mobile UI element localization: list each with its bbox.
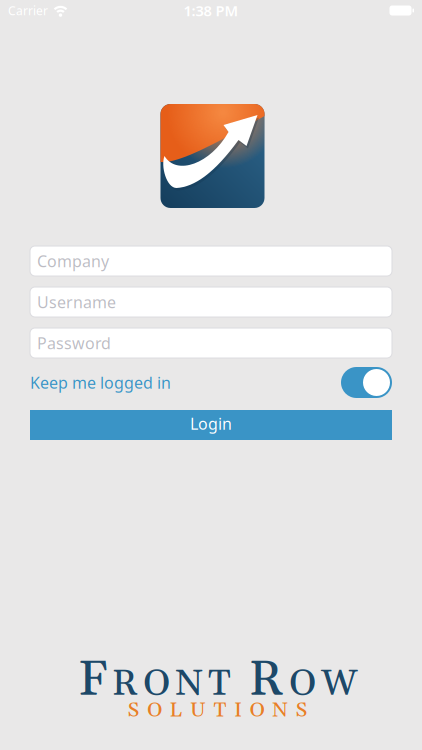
staticText: Company	[37, 250, 109, 272]
staticText: Password	[37, 332, 111, 354]
staticText: T	[213, 698, 226, 723]
staticText: N	[272, 698, 288, 723]
staticText: L	[169, 698, 182, 723]
staticText: Carrier	[8, 2, 48, 18]
staticText: O	[143, 661, 170, 707]
staticText: O	[249, 698, 264, 723]
button[interactable]: Password	[30, 328, 392, 358]
button[interactable]: Company	[30, 246, 392, 276]
staticText: T	[208, 661, 231, 707]
staticText: I	[234, 698, 242, 723]
staticText: R	[112, 661, 138, 707]
staticText: S	[127, 698, 139, 723]
staticText: W	[321, 661, 357, 707]
button[interactable]: Login	[30, 410, 392, 440]
staticText: U	[190, 698, 206, 723]
staticText: S	[295, 698, 307, 723]
staticText: Login	[190, 413, 232, 434]
staticText: R	[249, 650, 284, 711]
staticText: F	[78, 650, 107, 711]
button[interactable]: Keep me logged in	[341, 367, 392, 398]
staticText: 1:38 PM	[183, 1, 238, 20]
button[interactable]: Username	[30, 287, 392, 317]
staticText: O	[147, 698, 162, 723]
staticText: O	[289, 661, 316, 707]
staticText: N	[175, 661, 203, 707]
staticText: Username	[37, 291, 116, 313]
staticText: Keep me logged in	[30, 372, 171, 393]
